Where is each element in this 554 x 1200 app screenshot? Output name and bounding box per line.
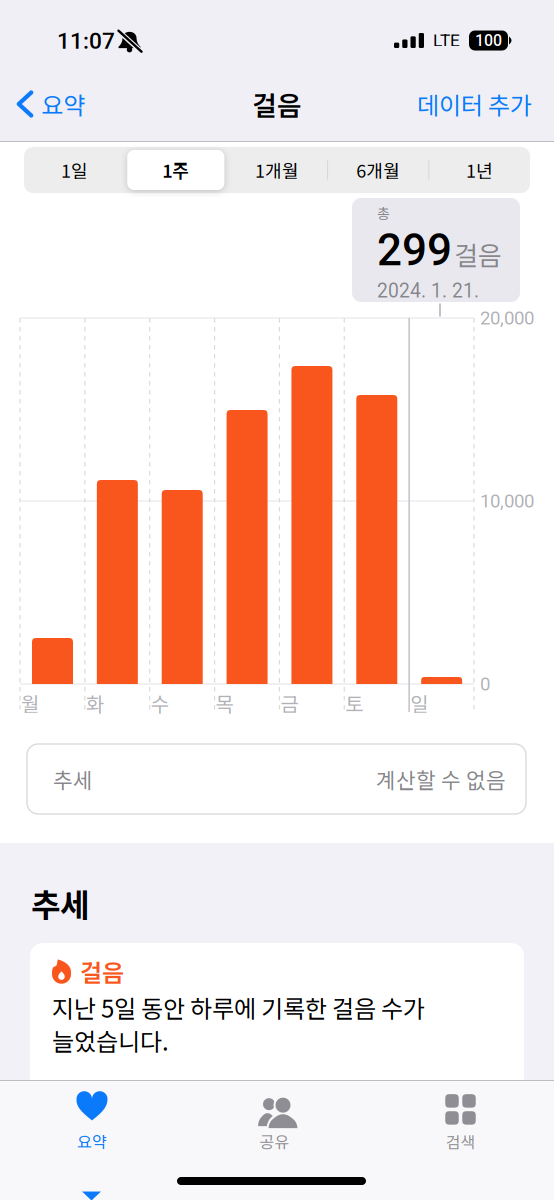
button[interactable]: 공유 [253,1091,295,1153]
button[interactable]: 6개월 [328,147,429,193]
button[interactable]: 1일 [24,147,125,193]
staticText: 총 [377,203,390,223]
staticText: 공유 [259,1130,289,1153]
staticText: 요약 [41,87,85,121]
staticText: 일 [410,688,428,717]
staticText: 6개월 [356,157,400,183]
staticText: 데이터 추가 [417,87,532,121]
button[interactable]: 1주 [125,147,226,193]
staticText: 299 [377,224,452,276]
staticText: 화 [86,688,104,717]
staticText: 추세 [31,880,89,926]
staticText: 검색 [445,1130,475,1153]
button[interactable]: 추세 [27,744,526,814]
staticText: 0 [480,673,490,695]
staticText: 1주 [162,157,189,183]
staticText: 1일 [61,157,88,183]
button[interactable]: 요약 [76,1091,107,1153]
staticText: 계산할 수 없음 [376,764,506,794]
button[interactable]: 검색 [445,1094,476,1153]
staticText: 10,000 [480,490,534,512]
staticText: LTE [433,30,460,51]
staticText: 걸음 [80,954,124,989]
staticText: 요약 [77,1129,107,1153]
staticText: 20,000 [480,307,534,329]
button[interactable]: 걸음 [30,943,524,1133]
staticText: 월 [21,688,39,717]
staticText: 토 [345,688,363,717]
staticText: 2024. 1. 21. [377,280,479,302]
button[interactable]: 1개월 [226,147,328,193]
staticText: 걸음 [454,235,502,273]
button[interactable]: 1년 [429,147,530,193]
staticText: 11:07 [57,28,115,54]
staticText: 금 [280,688,298,717]
button[interactable]: 데이터 추가 [332,87,532,121]
staticText: 100 [475,31,502,50]
staticText: 걸음 [252,85,302,123]
button[interactable]: 요약 [19,87,85,121]
staticText: 목 [216,688,234,717]
staticText: 지난 5일 동안 하루에 기록한 걸음 수가 [52,990,425,1025]
staticText: 수 [151,688,169,717]
staticText: 늘었습니다. [52,1023,169,1058]
staticText: 1년 [466,157,493,183]
staticText: 추세 [53,764,93,794]
staticText: 1개월 [255,157,299,183]
